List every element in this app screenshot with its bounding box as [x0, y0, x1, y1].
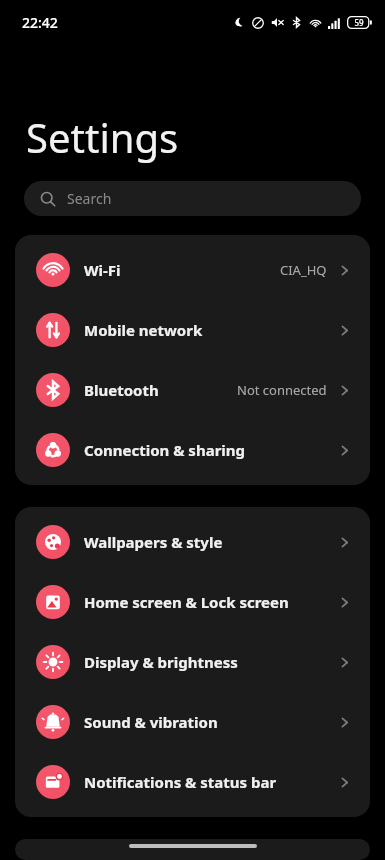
staticText: Display & brightness [84, 652, 238, 672]
staticText: Not connected [237, 381, 327, 399]
button[interactable]: Connection & sharing [15, 420, 370, 480]
button[interactable]: Display & brightness [15, 632, 370, 692]
button[interactable]: Home screen & Lock screen [15, 572, 370, 632]
staticText: Home screen & Lock screen [84, 592, 289, 612]
button[interactable]: Bluetooth [15, 360, 370, 420]
staticText: CIA_HQ [280, 261, 327, 279]
staticText: Wallpapers & style [84, 532, 223, 552]
staticText: Mobile network [84, 320, 203, 340]
button[interactable]: Wi-Fi [15, 240, 370, 300]
staticText: Sound & vibration [84, 712, 218, 732]
button[interactable]: Wallpapers & style [15, 512, 370, 572]
button[interactable]: Mobile network [15, 300, 370, 360]
staticText: Bluetooth [84, 380, 159, 400]
staticText: Connection & sharing [84, 440, 246, 460]
button[interactable]: Sound & vibration [15, 692, 370, 752]
staticText: Notifications & status bar [84, 772, 277, 792]
button[interactable]: Notifications & status bar [15, 752, 370, 812]
staticText: 22:42 [22, 13, 58, 32]
staticText: 59 [354, 17, 364, 28]
staticText: Wi-Fi [84, 260, 121, 280]
staticText: Search [67, 189, 112, 208]
staticText: Settings [26, 110, 179, 164]
button[interactable]: Search [24, 181, 361, 216]
